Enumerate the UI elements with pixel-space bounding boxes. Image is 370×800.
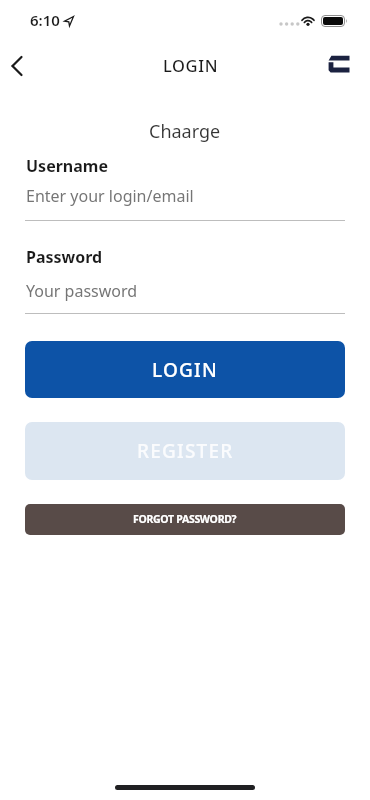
- staticText: 6:10: [30, 10, 60, 30]
- button[interactable]: REGISTER: [25, 422, 345, 480]
- staticText: Password: [26, 246, 103, 268]
- staticText: Username: [26, 155, 108, 177]
- staticText: Enter your login/email: [26, 185, 194, 207]
- staticText: REGISTER: [137, 438, 234, 464]
- button[interactable]: [0, 52, 34, 80]
- staticText: LOGIN: [152, 357, 218, 383]
- button[interactable]: [328, 55, 351, 74]
- button[interactable]: LOGIN: [25, 341, 345, 398]
- staticText: FORGOT PASSWORD?: [133, 512, 237, 526]
- staticText: Your password: [26, 280, 138, 302]
- button[interactable]: Enter your login/email: [25, 182, 345, 221]
- staticText: LOGIN: [163, 54, 219, 76]
- button[interactable]: Your password: [25, 278, 345, 314]
- button[interactable]: FORGOT PASSWORD?: [25, 504, 345, 535]
- staticText: Chaarge: [149, 119, 221, 144]
